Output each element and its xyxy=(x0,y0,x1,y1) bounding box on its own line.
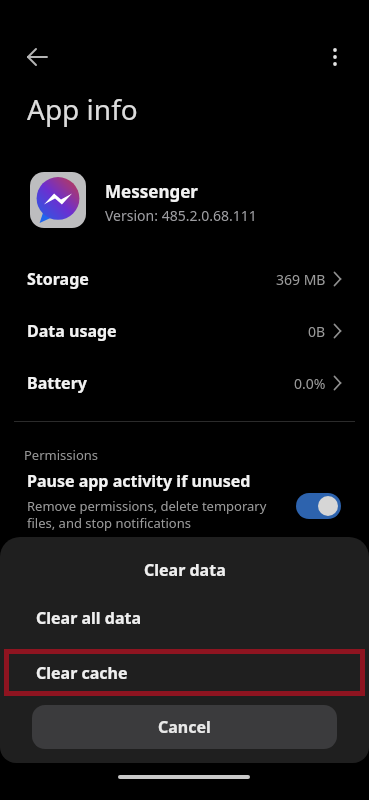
staticText: Clear cache xyxy=(36,662,128,684)
staticText: Clear data xyxy=(144,559,226,581)
button[interactable] xyxy=(18,37,58,77)
button[interactable]: Data usage xyxy=(0,305,369,357)
button[interactable]: Battery xyxy=(0,357,369,409)
staticText: Version: 485.2.0.68.111 xyxy=(105,206,257,225)
staticText: Pause app activity if unused xyxy=(27,470,251,492)
staticText: Remove permissions, delete temporary xyxy=(27,497,267,515)
staticText: 369 MB xyxy=(276,270,326,289)
button[interactable] xyxy=(315,37,355,77)
staticText: Messenger xyxy=(105,180,198,203)
staticText: 0.0% xyxy=(294,374,326,393)
button[interactable] xyxy=(296,493,341,519)
button[interactable]: Cancel xyxy=(32,705,337,749)
button[interactable]: Clear cache xyxy=(4,649,365,696)
staticText: App info xyxy=(27,90,138,128)
staticText: Battery xyxy=(27,372,87,394)
button[interactable]: Clear all data xyxy=(0,594,369,642)
staticText: Cancel xyxy=(158,716,211,738)
staticText: Clear all data xyxy=(36,607,141,629)
staticText: Permissions xyxy=(24,446,99,464)
button[interactable]: Storage xyxy=(0,253,369,305)
button[interactable]: Pause app activity if unused xyxy=(0,465,369,537)
staticText: Storage xyxy=(27,268,89,290)
staticText: files, and stop notifications xyxy=(27,514,191,532)
staticText: 0B xyxy=(308,322,326,341)
staticText: Data usage xyxy=(27,320,117,342)
